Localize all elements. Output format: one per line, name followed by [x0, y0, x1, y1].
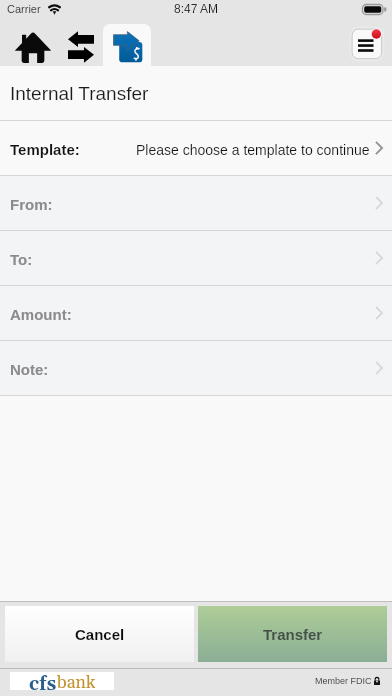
button[interactable]: To: — [0, 231, 392, 286]
staticText: To: — [10, 251, 33, 268]
staticText: 8:47 AM — [174, 2, 219, 15]
button[interactable]: Menu — [347, 27, 387, 66]
staticText: Template: — [10, 141, 80, 158]
button[interactable]: Note: — [0, 341, 392, 396]
button[interactable]: Transfer — [198, 606, 387, 662]
button[interactable]: Cancel — [5, 606, 194, 662]
staticText: Carrier — [7, 3, 41, 15]
button[interactable]: Template: — [0, 121, 392, 176]
staticText: cfs — [29, 672, 57, 690]
staticText: bank — [57, 672, 96, 690]
staticText: Please choose a template to continue — [136, 142, 370, 158]
button[interactable]: Home — [3, 22, 63, 66]
button[interactable]: Amount: — [0, 286, 392, 341]
staticText: Internal Transfer — [10, 83, 149, 104]
button[interactable]: Internal Transfer — [103, 22, 151, 66]
staticText: Note: — [10, 361, 49, 378]
staticText: From: — [10, 196, 53, 213]
button[interactable]: Transfers — [63, 22, 103, 66]
staticText: Cancel — [75, 626, 125, 643]
staticText: Member FDIC — [315, 676, 372, 686]
button[interactable]: From: — [0, 176, 392, 231]
staticText: Transfer — [263, 626, 323, 643]
staticText: Amount: — [10, 306, 72, 323]
button[interactable]: cfsbank — [10, 672, 114, 690]
